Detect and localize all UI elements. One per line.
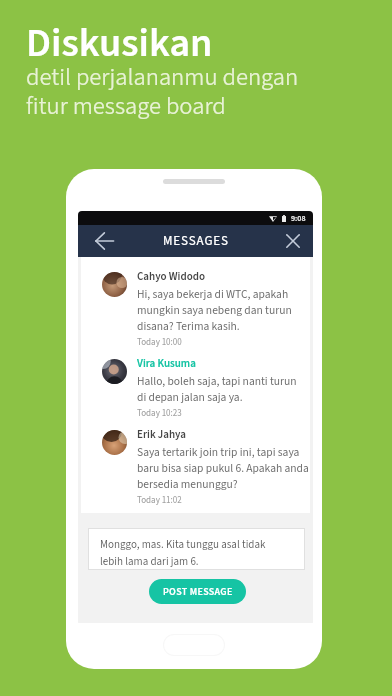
staticText: Hallo, boleh saja, tapi nanti turun di d… xyxy=(137,373,297,405)
staticText: MESSAGES xyxy=(163,232,229,251)
staticText: 9:08 xyxy=(291,213,306,224)
staticText: Today 10:00 xyxy=(137,336,182,349)
staticText: Monggo, mas. Kita tunggu asal tidak lebi… xyxy=(100,537,266,569)
button[interactable]: Erik Jahya xyxy=(81,430,310,513)
button[interactable]: Vira Kusuma xyxy=(81,359,310,426)
staticText: detil perjalananmu dengan fitur message … xyxy=(26,60,299,123)
staticText: Diskusikan xyxy=(26,15,213,72)
staticText: POST MESSAGE xyxy=(163,585,233,599)
staticText: Erik Jahya xyxy=(137,427,186,443)
staticText: Today 10:23 xyxy=(137,407,182,420)
staticText: Saya tertarik join trip ini, tapi saya b… xyxy=(137,444,308,492)
staticText: Vira Kusuma xyxy=(137,356,196,372)
staticText: Cahyo Widodo xyxy=(137,269,205,285)
staticText: Today 11:02 xyxy=(137,494,182,507)
button[interactable]: Cahyo Widodo xyxy=(81,272,310,355)
button[interactable]: Back xyxy=(91,228,117,254)
button[interactable]: Close xyxy=(280,228,306,254)
button[interactable]: POST MESSAGE xyxy=(149,579,246,604)
button[interactable]: Monggo, mas. Kita tunggu asal tidak lebi… xyxy=(89,529,304,569)
staticText: Hi, saya bekerja di WTC, apakah mungkin … xyxy=(137,286,292,334)
